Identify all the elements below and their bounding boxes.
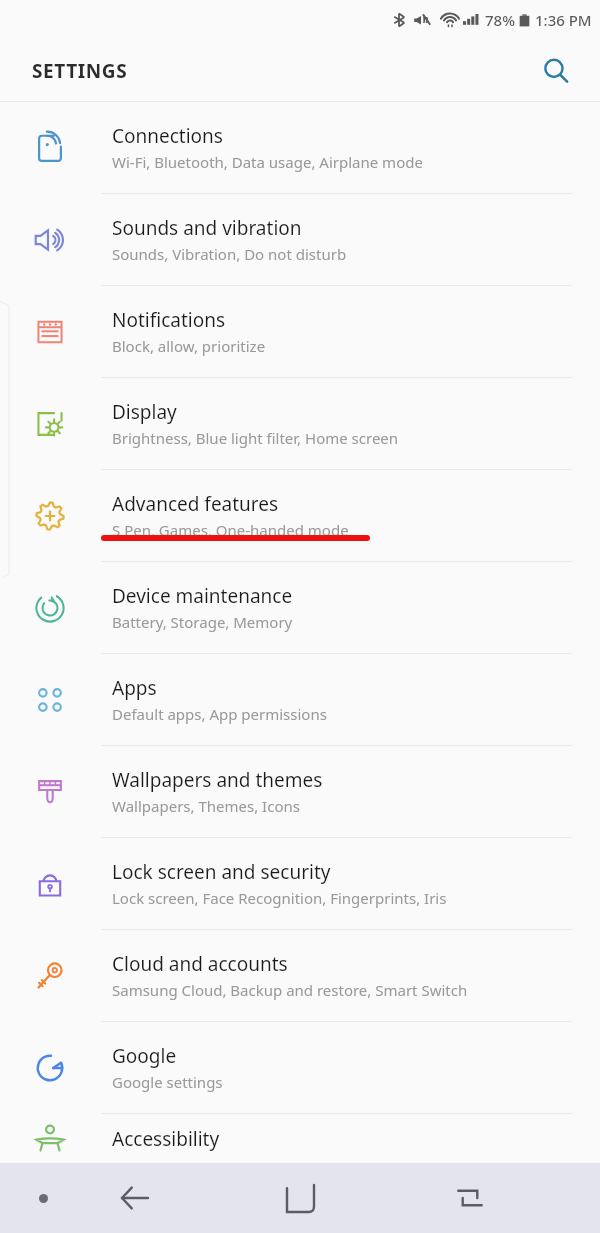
- staticText: Sounds and vibration: [112, 215, 302, 241]
- button[interactable]: Notifications: [0, 286, 600, 377]
- staticText: Cloud and accounts: [112, 951, 288, 977]
- staticText: Battery, Storage, Memory: [112, 612, 293, 632]
- staticText: Apps: [112, 675, 157, 701]
- button[interactable]: Wallpapers and themes: [0, 746, 600, 837]
- staticText: Device maintenance: [112, 583, 293, 609]
- button[interactable]: Advanced features: [0, 470, 600, 561]
- staticText: Block, allow, prioritize: [112, 336, 266, 356]
- button[interactable]: Search: [534, 49, 578, 93]
- staticText: Wallpapers, Themes, Icons: [112, 796, 300, 816]
- staticText: Lock screen, Face Recognition, Fingerpri…: [112, 888, 447, 908]
- staticText: 1:36 PM: [535, 10, 592, 30]
- staticText: Accessibility: [112, 1126, 220, 1152]
- staticText: Wallpapers and themes: [112, 767, 323, 793]
- staticText: Default apps, App permissions: [112, 704, 327, 724]
- staticText: Lock screen and security: [112, 859, 331, 885]
- button[interactable]: Apps: [0, 654, 600, 745]
- staticText: Display: [112, 399, 177, 425]
- button[interactable]: Google: [0, 1022, 600, 1113]
- button[interactable]: Connections: [0, 102, 600, 193]
- button[interactable]: Back: [110, 1174, 158, 1222]
- staticText: Wi-Fi, Bluetooth, Data usage, Airplane m…: [112, 152, 423, 172]
- staticText: S Pen, Games, One-handed mode: [112, 520, 349, 540]
- staticText: SETTINGS: [32, 58, 128, 84]
- button[interactable]: Home: [274, 1172, 326, 1224]
- button[interactable]: Cloud and accounts: [0, 930, 600, 1021]
- staticText: 78%: [485, 10, 515, 30]
- staticText: Samsung Cloud, Backup and restore, Smart…: [112, 980, 468, 1000]
- button[interactable]: Sounds and vibration: [0, 194, 600, 285]
- staticText: Advanced features: [112, 491, 279, 517]
- button[interactable]: Device maintenance: [0, 562, 600, 653]
- button[interactable]: Lock screen and security: [0, 838, 600, 929]
- button[interactable]: Recents: [446, 1174, 494, 1222]
- staticText: Brightness, Blue light filter, Home scre…: [112, 428, 399, 448]
- button[interactable]: Menu indicator: [26, 1181, 60, 1215]
- staticText: Sounds, Vibration, Do not disturb: [112, 244, 347, 264]
- staticText: Google: [112, 1043, 177, 1069]
- staticText: Notifications: [112, 307, 226, 333]
- staticText: Connections: [112, 123, 223, 149]
- button[interactable]: Display: [0, 378, 600, 469]
- staticText: Google settings: [112, 1072, 223, 1092]
